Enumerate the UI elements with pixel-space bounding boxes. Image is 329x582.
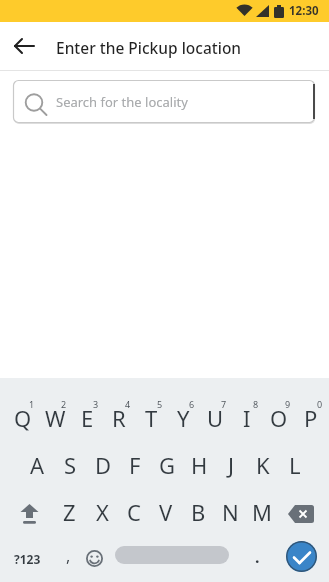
button[interactable]: R	[103, 394, 135, 441]
staticText: Enter the Pickup location	[56, 37, 242, 58]
staticText: I	[243, 403, 251, 433]
button[interactable]: Search for the locality	[13, 80, 315, 124]
staticText: D	[95, 450, 112, 480]
staticText: N	[222, 497, 239, 527]
button[interactable]: J	[215, 441, 247, 488]
button[interactable]: W	[39, 394, 71, 441]
button[interactable]: Y	[167, 394, 199, 441]
staticText: Search for the locality	[56, 93, 188, 111]
staticText: C	[127, 497, 141, 527]
button[interactable]: I	[231, 394, 263, 441]
staticText: ?123	[14, 551, 41, 567]
button[interactable]: N	[214, 488, 246, 535]
staticText: 3	[93, 398, 99, 410]
staticText: X	[96, 497, 109, 527]
staticText: 6	[189, 398, 195, 410]
staticText: 4	[125, 398, 131, 410]
button[interactable]	[278, 488, 329, 535]
button[interactable]: S	[54, 441, 87, 488]
button[interactable]: O	[263, 394, 295, 441]
staticText: Y	[177, 403, 190, 433]
staticText: B	[191, 497, 206, 527]
button[interactable]: P	[295, 394, 327, 441]
button[interactable]: F	[119, 441, 151, 488]
staticText: 9	[285, 398, 291, 410]
staticText: 2	[61, 398, 67, 410]
button[interactable]	[0, 488, 53, 535]
button[interactable]: ?123	[0, 535, 55, 582]
button[interactable]: L	[279, 441, 311, 488]
staticText: T	[145, 403, 158, 433]
button[interactable]: G	[151, 441, 183, 488]
staticText: 1	[29, 398, 35, 410]
staticText: R	[112, 403, 126, 433]
staticText: E	[81, 403, 94, 433]
button[interactable]: E	[71, 394, 103, 441]
staticText: J	[228, 450, 235, 480]
button[interactable]: H	[183, 441, 215, 488]
staticText: A	[30, 450, 45, 480]
button[interactable]: X	[86, 488, 118, 535]
staticText: ,	[66, 545, 71, 567]
button[interactable]: U	[199, 394, 231, 441]
staticText: .	[255, 546, 260, 568]
staticText: 7	[221, 398, 227, 410]
staticText: P	[304, 403, 318, 433]
button[interactable]: .	[242, 535, 273, 582]
staticText: M	[252, 497, 272, 527]
button[interactable]	[0, 22, 48, 70]
button[interactable]: D	[87, 441, 119, 488]
staticText: 8	[253, 398, 259, 410]
button[interactable]: T	[135, 394, 167, 441]
button[interactable]: B	[182, 488, 214, 535]
staticText: G	[159, 450, 176, 480]
staticText: O	[270, 403, 288, 433]
staticText: Q	[14, 403, 32, 433]
button[interactable]: ,	[55, 535, 81, 582]
staticText: V	[159, 497, 173, 527]
staticText: 5	[157, 398, 163, 410]
staticText: 12:30	[289, 3, 319, 19]
button[interactable]: V	[150, 488, 182, 535]
button[interactable]: M	[246, 488, 278, 535]
staticText: K	[256, 450, 270, 480]
staticText: 0	[317, 398, 323, 410]
button[interactable]	[107, 535, 242, 582]
staticText: U	[207, 403, 224, 433]
button[interactable]: C	[118, 488, 150, 535]
staticText: Z	[63, 497, 76, 527]
staticText: F	[129, 450, 141, 480]
staticText: W	[45, 403, 66, 433]
button[interactable]: Z	[53, 488, 86, 535]
button[interactable]	[273, 535, 329, 582]
button[interactable]	[81, 535, 107, 582]
staticText: L	[289, 450, 301, 480]
staticText: H	[191, 450, 208, 480]
button[interactable]: K	[247, 441, 279, 488]
button[interactable]: A	[21, 441, 54, 488]
button[interactable]: Q	[6, 394, 39, 441]
staticText: S	[64, 450, 77, 480]
